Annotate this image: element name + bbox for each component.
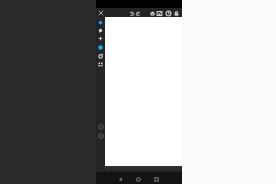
button[interactable]: Smudge <box>96 34 105 42</box>
button[interactable]: Brush <box>96 18 105 26</box>
button[interactable]: History <box>164 9 172 17</box>
button[interactable]: Undo <box>127 9 135 17</box>
button[interactable]: Layers <box>148 9 156 17</box>
button[interactable]: Redo <box>134 9 142 17</box>
button[interactable]: Lock <box>172 9 180 17</box>
button[interactable]: Settings <box>96 123 105 131</box>
button[interactable]: Recent apps <box>151 174 161 184</box>
button[interactable]: Add image <box>155 9 163 17</box>
button[interactable]: Layers panel <box>96 60 105 68</box>
button[interactable]: Back <box>115 174 125 184</box>
button[interactable]: Shapes <box>96 52 105 60</box>
button[interactable]: Close <box>97 9 104 16</box>
button[interactable]: More options <box>96 132 105 140</box>
button[interactable]: Home <box>133 174 143 184</box>
button[interactable]: Colour <box>96 43 105 51</box>
button[interactable]: Eraser <box>96 26 105 34</box>
